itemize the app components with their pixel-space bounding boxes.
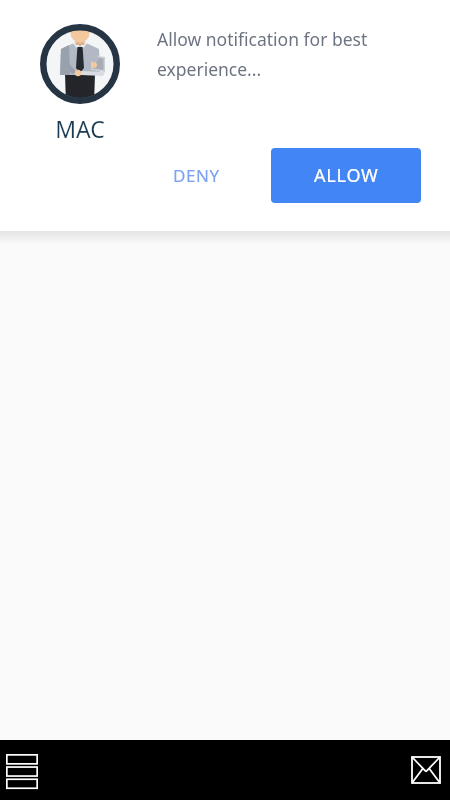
button[interactable]: Menu: [2, 750, 42, 790]
button[interactable]: ALLOW: [271, 148, 421, 203]
staticText: ALLOW: [314, 163, 379, 188]
button[interactable]: Messages: [406, 750, 446, 790]
staticText: MAC: [55, 113, 105, 144]
staticText: Allow notification for best experience..…: [157, 27, 419, 81]
staticText: DENY: [173, 164, 220, 187]
button[interactable]: DENY: [157, 151, 236, 200]
